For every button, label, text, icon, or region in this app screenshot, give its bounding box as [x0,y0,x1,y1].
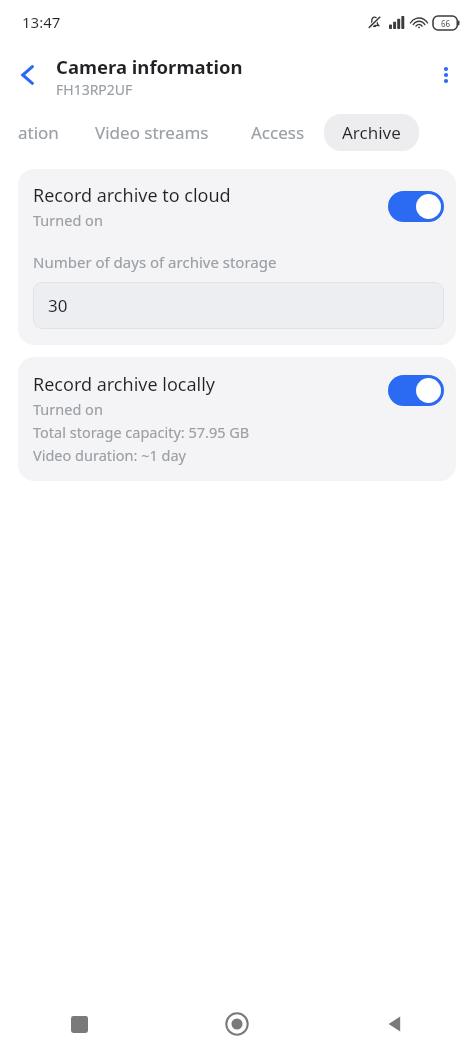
button[interactable]: Record archive to cloud [18,169,456,345]
button[interactable]: Video streams [95,121,209,144]
staticText: Total storage capacity: 57.95 GB [33,422,250,442]
button[interactable]: 30 [33,282,444,329]
button[interactable]: ation [18,121,59,144]
button[interactable]: Toggle [388,375,444,406]
staticText: Number of days of archive storage [33,252,277,272]
staticText: 30 [48,294,68,317]
button[interactable]: Toggle [388,191,444,222]
staticText: 13:47 [22,12,61,32]
staticText: Record archive to cloud [33,183,231,208]
staticText: Archive [342,121,401,144]
button[interactable]: Home [158,988,316,1060]
staticText: Turned on [33,399,103,419]
staticText: Video duration: ~1 day [33,445,186,465]
staticText: FH13RP2UF [56,80,133,99]
button[interactable]: Record archive locally [18,357,456,481]
button[interactable]: More options [422,51,470,99]
button[interactable]: Archive [324,114,419,151]
staticText: Video streams [95,121,209,144]
staticText: Turned on [33,210,103,230]
staticText: ation [18,121,59,144]
button[interactable]: Access [251,121,305,144]
staticText: Record archive locally [33,372,215,397]
staticText: 66 [441,18,451,29]
staticText: Camera information [56,54,243,79]
button[interactable]: Recents [0,988,158,1060]
button[interactable]: Back [316,988,474,1060]
button[interactable]: Back [4,51,52,99]
staticText: Access [251,121,305,144]
